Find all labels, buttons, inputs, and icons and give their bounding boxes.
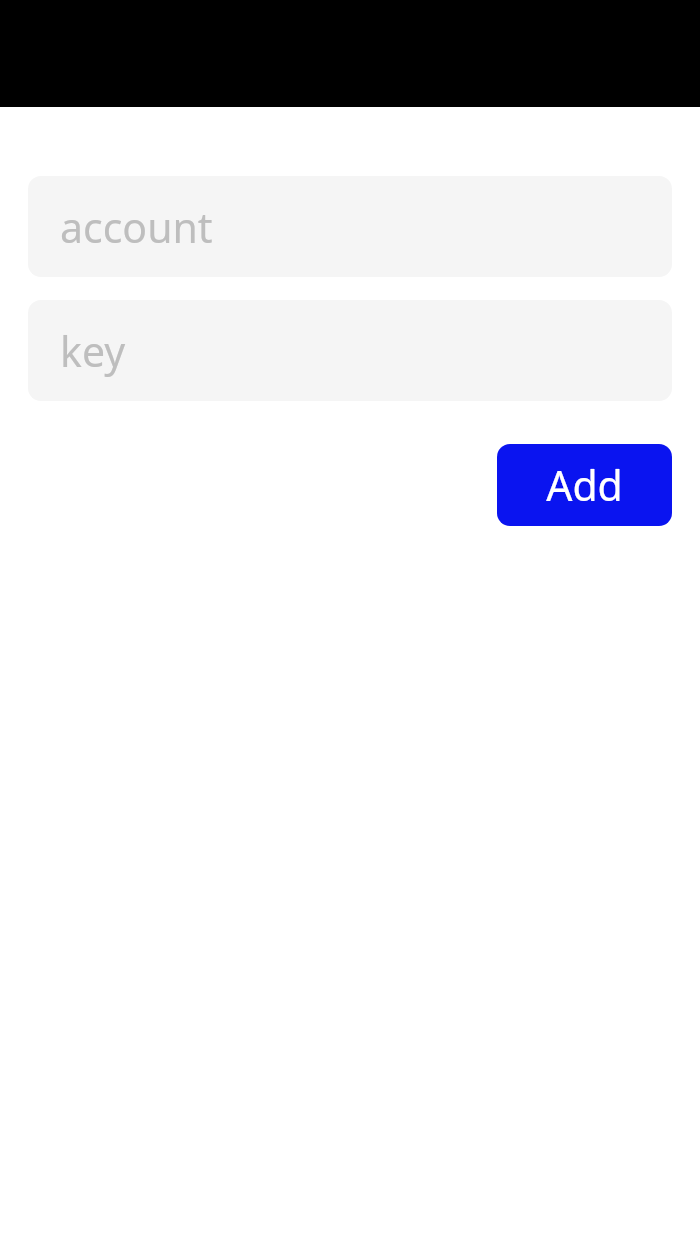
- button[interactable]: account: [28, 176, 672, 277]
- button[interactable]: Add: [497, 444, 672, 526]
- staticText: account: [60, 199, 213, 255]
- staticText: Add: [546, 457, 623, 513]
- staticText: key: [60, 323, 126, 379]
- button[interactable]: key: [28, 300, 672, 401]
